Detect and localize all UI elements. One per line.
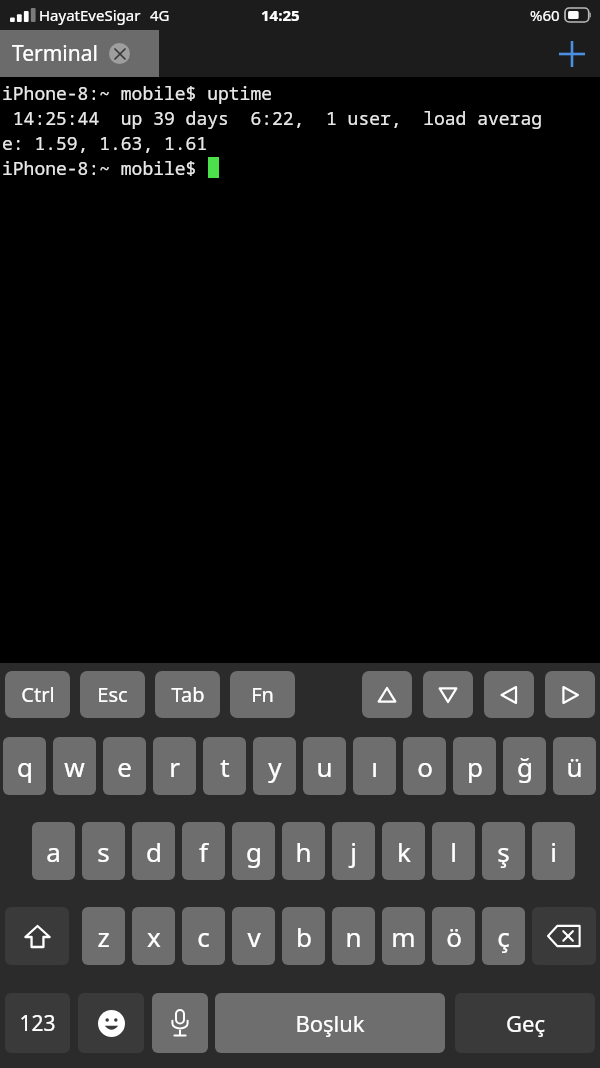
staticText: 14:25 <box>261 5 300 25</box>
button[interactable]: Backspace <box>532 907 596 965</box>
button[interactable]: Arrow left <box>484 671 534 718</box>
button[interactable]: c <box>182 907 225 965</box>
button[interactable]: d <box>132 822 175 880</box>
button[interactable]: r <box>153 737 196 795</box>
staticText: u <box>316 749 333 784</box>
button[interactable]: w <box>53 737 96 795</box>
button[interactable]: Terminal <box>0 30 159 77</box>
staticText: w <box>64 749 85 784</box>
staticText: iPhone-8:~ mobile$ uptime <box>2 81 272 106</box>
staticText: t <box>220 749 230 784</box>
button[interactable]: Arrow down <box>423 671 473 718</box>
staticText: m <box>391 919 416 954</box>
staticText: Esc <box>97 681 128 708</box>
staticText: ç <box>497 919 510 954</box>
staticText: ü <box>566 749 583 784</box>
staticText: 14:25:44 up 39 days 6:22, 1 user, load a… <box>2 106 542 131</box>
button[interactable]: Esc <box>80 671 145 718</box>
button[interactable]: Ctrl <box>5 671 70 718</box>
button[interactable]: ö <box>432 907 475 965</box>
button[interactable]: Arrow right <box>545 671 595 718</box>
staticText: r <box>169 749 180 784</box>
staticText: p <box>467 749 483 784</box>
staticText: v <box>247 919 261 954</box>
staticText: x <box>147 919 161 954</box>
button[interactable]: m <box>382 907 425 965</box>
staticText: Geç <box>506 1008 545 1038</box>
button[interactable]: n <box>332 907 375 965</box>
staticText: e <box>117 749 132 784</box>
button[interactable]: Microphone <box>152 993 208 1053</box>
button[interactable]: ü <box>553 737 596 795</box>
button[interactable]: Tab <box>155 671 220 718</box>
button[interactable]: ç <box>482 907 525 965</box>
button[interactable]: i <box>532 822 575 880</box>
button[interactable]: 123 <box>5 993 70 1053</box>
staticText: 4G <box>150 5 170 25</box>
button[interactable]: z <box>82 907 125 965</box>
button[interactable]: s <box>82 822 125 880</box>
staticText: Tab <box>171 681 205 708</box>
staticText: o <box>417 749 433 784</box>
button[interactable]: Geç <box>455 993 595 1053</box>
button[interactable]: ğ <box>503 737 546 795</box>
button[interactable]: Boşluk <box>215 993 445 1053</box>
button[interactable]: b <box>282 907 325 965</box>
staticText: e: 1.59, 1.63, 1.61 <box>2 131 208 156</box>
staticText: Fn <box>251 681 274 708</box>
button[interactable]: y <box>253 737 296 795</box>
button[interactable]: p <box>453 737 496 795</box>
staticText: b <box>296 919 312 954</box>
button[interactable]: Close tab <box>109 43 130 64</box>
staticText: l <box>450 834 457 869</box>
staticText: j <box>350 834 357 869</box>
button[interactable]: h <box>282 822 325 880</box>
button[interactable]: k <box>382 822 425 880</box>
button[interactable]: Fn <box>230 671 295 718</box>
button[interactable]: v <box>232 907 275 965</box>
button[interactable]: u <box>303 737 346 795</box>
button[interactable]: j <box>332 822 375 880</box>
staticText: %60 <box>530 5 560 25</box>
button[interactable]: ı <box>353 737 396 795</box>
button[interactable]: t <box>203 737 246 795</box>
staticText: ı <box>371 749 378 784</box>
button[interactable]: ş <box>482 822 525 880</box>
staticText: a <box>46 834 61 869</box>
button[interactable]: New tab <box>544 30 600 77</box>
staticText: g <box>246 834 262 869</box>
staticText: k <box>397 834 411 869</box>
button[interactable]: f <box>182 822 225 880</box>
staticText: Boşluk <box>295 1008 365 1038</box>
staticText: HayatEveSigar <box>39 5 141 25</box>
button[interactable]: g <box>232 822 275 880</box>
staticText: ö <box>446 919 462 954</box>
staticText: h <box>295 834 312 869</box>
staticText: Ctrl <box>21 681 55 708</box>
staticText: f <box>199 834 208 869</box>
staticText: ş <box>497 834 510 869</box>
staticText: z <box>97 919 110 954</box>
staticText: q <box>17 749 33 784</box>
button[interactable]: q <box>3 737 46 795</box>
button[interactable]: o <box>403 737 446 795</box>
staticText: y <box>268 749 282 784</box>
button[interactable]: l <box>432 822 475 880</box>
staticText: s <box>97 834 110 869</box>
button[interactable]: Arrow up <box>362 671 412 718</box>
button[interactable]: iPhone-8:~ mobile$ uptime <box>0 77 600 663</box>
staticText: n <box>345 919 362 954</box>
staticText: Terminal <box>12 39 98 68</box>
button[interactable]: Emoji <box>78 993 144 1053</box>
staticText: ğ <box>517 749 533 784</box>
staticText: 123 <box>19 1009 56 1038</box>
staticText: d <box>146 834 162 869</box>
staticText: c <box>197 919 210 954</box>
button[interactable]: x <box>132 907 175 965</box>
button[interactable]: a <box>32 822 75 880</box>
button[interactable]: Shift <box>5 907 69 965</box>
staticText: iPhone-8:~ mobile$ <box>2 156 208 181</box>
staticText: i <box>550 834 557 869</box>
button[interactable]: e <box>103 737 146 795</box>
